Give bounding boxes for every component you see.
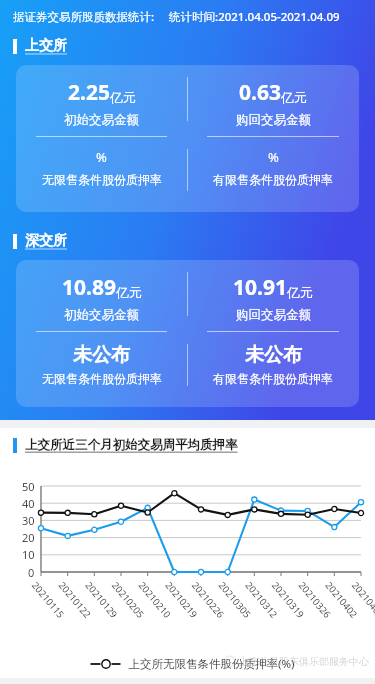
staticText: 购回交易金额 [236, 307, 311, 323]
staticText: 初始交易金额 [64, 112, 139, 128]
button[interactable]: 深交所 [0, 229, 375, 253]
staticText: 据证券交易所股质数据统计: [13, 9, 155, 25]
button[interactable]: 10.89 [16, 260, 359, 407]
staticText: 亿元 [110, 89, 136, 105]
staticText: 10.91 [233, 273, 287, 302]
staticText: 亿元 [287, 284, 313, 300]
staticText: 统计时间:2021.04.05-2021.04.09 [169, 9, 340, 25]
staticText: 上交所近三个月初始交易周平均质押率 [25, 437, 238, 453]
staticText: 亿元 [116, 284, 142, 300]
staticText: 上交所 [25, 37, 67, 55]
staticText: 未公布 [245, 343, 302, 367]
staticText: 无限售条件股份质押率 [42, 371, 162, 386]
button[interactable]: 2.25 [16, 65, 359, 212]
staticText: 深交所 [25, 232, 67, 250]
staticText: 初始交易金额 [64, 307, 139, 323]
staticText: 购回交易金额 [236, 112, 311, 128]
staticText: 无限售条件股份质押率 [42, 172, 162, 187]
button[interactable]: 上交所近三个月初始交易周平均质押率 [0, 434, 375, 456]
staticText: 有限售条件股份质押率 [213, 371, 333, 386]
staticText: 10.89 [62, 273, 116, 302]
staticText: % [268, 148, 279, 166]
staticText: 0.63 [239, 78, 281, 107]
staticText: % [96, 148, 107, 166]
staticText: 亿元 [281, 89, 307, 105]
staticText: 未公布 [73, 343, 130, 367]
staticText: 2.25 [68, 78, 110, 107]
button[interactable]: 上交所 [0, 34, 375, 58]
staticText: 有限售条件股份质押率 [213, 172, 333, 187]
staticText: 上市公司股东俱乐部服务中心 [239, 655, 369, 668]
